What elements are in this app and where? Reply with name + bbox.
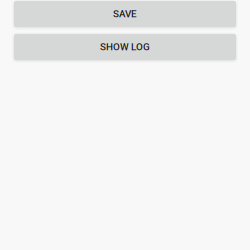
button[interactable]: SHOW LOG xyxy=(14,34,236,60)
button[interactable]: SAVE xyxy=(14,1,236,27)
staticText: SAVE xyxy=(113,8,137,20)
staticText: SHOW LOG xyxy=(100,41,150,53)
